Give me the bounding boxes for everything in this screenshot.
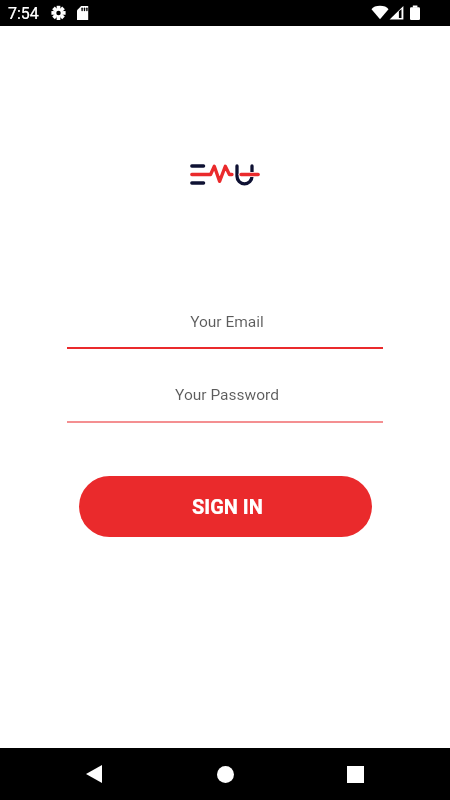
button[interactable]: Your Email — [71, 306, 383, 337]
button[interactable]: Your Password — [71, 379, 383, 410]
button[interactable]: Back — [70, 750, 118, 798]
staticText: 7:54 — [8, 4, 39, 23]
staticText: Your Password — [175, 386, 279, 404]
button[interactable]: Home — [201, 750, 249, 798]
button[interactable]: Recent apps — [331, 750, 379, 798]
staticText: SIGN IN — [192, 495, 263, 518]
button[interactable]: SIGN IN — [79, 476, 372, 537]
staticText: Your Email — [190, 313, 264, 331]
